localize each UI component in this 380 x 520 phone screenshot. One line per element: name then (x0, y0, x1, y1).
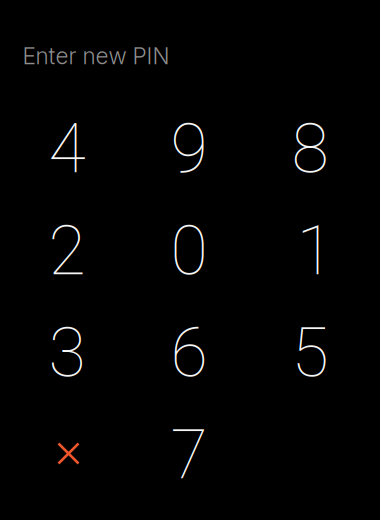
button[interactable]: 4 (6, 98, 127, 200)
button[interactable]: 8 (249, 98, 370, 200)
staticText: 3 (48, 313, 85, 393)
staticText: 2 (48, 211, 85, 291)
button[interactable]: 5 (249, 302, 370, 404)
staticText: 6 (170, 313, 207, 393)
button[interactable]: 2 (6, 200, 127, 302)
button[interactable]: 1 (254, 200, 375, 302)
staticText: 7 (170, 415, 207, 495)
staticText: 9 (170, 109, 207, 189)
staticText: 4 (48, 109, 85, 189)
button[interactable]: 7 (128, 404, 249, 506)
button[interactable]: 3 (6, 302, 127, 404)
staticText: Enter new PIN (22, 42, 169, 70)
staticText: 1 (296, 211, 333, 291)
staticText: 8 (291, 109, 328, 189)
button[interactable]: 6 (128, 302, 249, 404)
button[interactable]: Delete (8, 402, 129, 504)
button[interactable]: 0 (128, 200, 249, 302)
staticText: 5 (291, 313, 328, 393)
button[interactable]: 9 (128, 98, 249, 200)
staticText: 0 (170, 211, 207, 291)
